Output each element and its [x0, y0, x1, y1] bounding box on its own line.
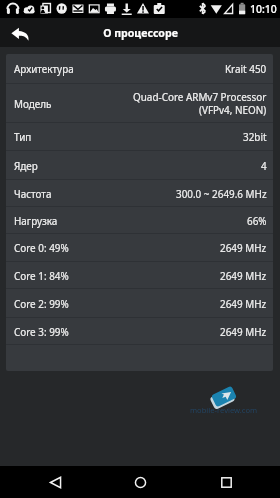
button[interactable]: Core 3: 99% — [6, 318, 273, 344]
button[interactable]: Частота — [6, 180, 273, 206]
staticText: Krait 450 — [225, 62, 267, 75]
staticText: Архитектура — [14, 62, 74, 75]
staticText: Нагрузка — [14, 214, 58, 227]
staticText: Core 3: 99% — [14, 325, 69, 338]
staticText: 66% — [247, 214, 267, 227]
staticText: mobile-review.com — [190, 405, 258, 415]
staticText: Core 1: 84% — [14, 269, 69, 282]
staticText: Core 2: 99% — [14, 297, 69, 310]
button[interactable]: Нагрузка — [6, 207, 273, 233]
button[interactable]: Core 0: 49% — [6, 234, 273, 261]
staticText: Частота — [14, 187, 52, 200]
button[interactable]: Ядер — [6, 151, 273, 179]
staticText: Core 0: 49% — [14, 241, 69, 254]
staticText: Тип — [14, 130, 32, 143]
staticText: (VFPv4, NEON) — [199, 103, 267, 116]
button[interactable]: Архитектура — [6, 54, 273, 83]
button[interactable]: Recents — [206, 466, 246, 498]
button[interactable]: Модель — [6, 84, 273, 122]
button[interactable]: Back — [0, 18, 38, 47]
button[interactable]: Home — [120, 466, 160, 498]
staticText: О процессоре — [103, 26, 178, 40]
staticText: 10:10 — [250, 2, 277, 16]
button[interactable]: Core 1: 84% — [6, 262, 273, 288]
button[interactable]: Back — [35, 466, 75, 498]
button[interactable]: Core 2: 99% — [6, 289, 273, 317]
staticText: 2649 MHz — [220, 269, 267, 282]
staticText: 300.0 ~ 2649.6 MHz — [176, 187, 267, 200]
staticText: 32bit — [243, 130, 267, 143]
button[interactable]: Тип — [6, 123, 273, 150]
staticText: Модель — [14, 97, 52, 110]
staticText: 2649 MHz — [220, 297, 267, 310]
staticText: 2649 MHz — [220, 241, 267, 254]
staticText: 4 — [261, 159, 267, 172]
staticText: Ядер — [14, 159, 38, 172]
staticText: 2649 MHz — [220, 325, 267, 338]
staticText: Quad-Core ARMv7 Processor — [133, 90, 267, 103]
